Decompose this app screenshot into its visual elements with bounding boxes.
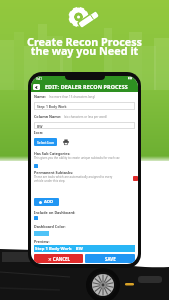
staticText: EDIT: DEALER RECON PROCESS xyxy=(45,83,128,90)
button[interactable]: ADD xyxy=(34,198,59,206)
button[interactable]: Delete subtask xyxy=(133,176,138,181)
staticText: Step 1 Body Work BW xyxy=(34,246,83,252)
staticText: Include on Dashboard: xyxy=(34,210,76,215)
button[interactable]: Toggle xyxy=(34,164,38,168)
staticText: Name: xyxy=(34,94,47,99)
staticText: (six characters or less per word) xyxy=(64,115,107,119)
staticText: Select Icon xyxy=(37,140,55,145)
staticText: Icon: xyxy=(34,130,44,135)
button[interactable]: Back xyxy=(33,84,40,90)
staticText: (no more than 15 characters long) xyxy=(49,95,96,99)
staticText: Column Name: xyxy=(34,114,62,119)
button[interactable]: Toggle xyxy=(34,216,38,220)
staticText: BW xyxy=(37,124,43,128)
staticText: ADD xyxy=(44,199,54,205)
staticText: Dashboard Color: xyxy=(34,224,66,229)
staticText: ▮▮▮ xyxy=(128,77,133,80)
staticText: Preview: xyxy=(34,239,50,244)
staticText: Has Sub Categories: xyxy=(34,151,71,156)
staticText: Step: 1 Body Work xyxy=(37,104,67,108)
staticText: This gives you the ability to create uni… xyxy=(34,156,135,160)
staticText: These are tasks which are automatically … xyxy=(34,175,121,183)
staticText: Permanent Subtasks: xyxy=(34,170,74,175)
staticText: 9:41 xyxy=(36,77,42,81)
staticText: Create Recon Process the way you Need it xyxy=(27,34,142,59)
staticText: SAVE xyxy=(105,256,116,262)
button[interactable]: Select Icon xyxy=(34,138,57,146)
button[interactable]: ✕ CANCEL xyxy=(34,254,83,263)
button[interactable]: SAVE xyxy=(85,254,135,263)
staticText: ✕ CANCEL xyxy=(48,256,70,262)
